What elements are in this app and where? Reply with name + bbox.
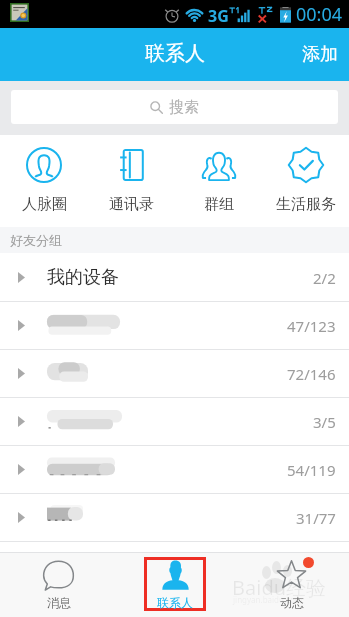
staticText: 联系人	[145, 41, 205, 66]
button[interactable]: 搜索	[11, 90, 338, 124]
button[interactable]: 72/146	[0, 350, 349, 397]
other: Notification	[10, 3, 29, 22]
staticText: Baidu经验	[232, 574, 327, 601]
staticText: 消息	[47, 595, 71, 610]
button[interactable]: 31/77	[0, 494, 349, 541]
staticText: 31/77	[296, 508, 336, 528]
staticText: 3/5	[313, 412, 336, 432]
button[interactable]: 添加	[288, 31, 349, 78]
button[interactable]: 群组	[175, 145, 262, 218]
staticText: jingyan.baidu.com	[233, 594, 303, 605]
staticText: 72/146	[287, 364, 336, 384]
staticText: 联系人	[157, 595, 193, 610]
button[interactable]: 3/5	[0, 398, 349, 445]
staticText: 搜索	[169, 98, 199, 117]
button[interactable]: 47/123	[0, 302, 349, 349]
staticText: 动态	[280, 595, 304, 610]
staticText: 好友分组	[10, 232, 62, 248]
button[interactable]: 生活服务	[262, 145, 349, 218]
staticText: 2/2	[313, 268, 336, 288]
staticText: 群组	[204, 195, 234, 214]
staticText: 生活服务	[276, 195, 336, 214]
button[interactable]: 我的设备	[0, 254, 349, 301]
button[interactable]: 联系人	[141, 555, 209, 614]
staticText: 47/123	[287, 316, 336, 336]
button[interactable]: 人脉圈	[0, 145, 88, 218]
staticText: 54/119	[287, 460, 336, 480]
staticText: 人脉圈	[22, 195, 67, 214]
staticText: 我的设备	[47, 266, 119, 289]
button[interactable]: 54/119	[0, 446, 349, 493]
button[interactable]: 消息	[26, 555, 91, 614]
button[interactable]: 通讯录	[88, 145, 175, 218]
staticText: 00:04	[296, 2, 343, 27]
button[interactable]: 动态	[259, 555, 324, 614]
staticText: 添加	[302, 43, 338, 66]
staticText: 3G	[208, 5, 229, 27]
staticText: 通讯录	[109, 195, 154, 214]
